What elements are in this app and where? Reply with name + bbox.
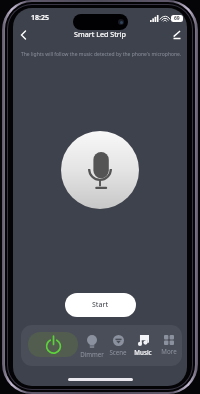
button[interactable]: More xyxy=(156,334,182,359)
staticText: The lights will follow the music detecte… xyxy=(21,51,182,58)
button[interactable]: Start xyxy=(65,293,136,317)
button[interactable]: Back xyxy=(16,27,31,42)
staticText: Dimmer xyxy=(80,350,104,358)
button[interactable]: Microphone xyxy=(61,131,139,209)
staticText: 18:25 xyxy=(31,13,49,23)
staticText: Smart Led Strip xyxy=(74,29,127,39)
staticText: More xyxy=(161,347,177,355)
staticText: 69 xyxy=(174,15,180,22)
staticText: Music xyxy=(134,348,152,356)
staticText: Start xyxy=(92,300,109,310)
button[interactable]: Power xyxy=(28,332,78,357)
button[interactable]: Dimmer xyxy=(79,334,105,359)
button[interactable]: Music xyxy=(130,334,156,359)
button[interactable]: Edit xyxy=(169,27,184,42)
button[interactable]: Scene xyxy=(105,334,131,359)
staticText: Scene xyxy=(109,348,127,356)
